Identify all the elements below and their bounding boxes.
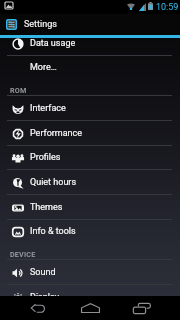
staticText: Interface <box>30 103 66 114</box>
staticText: Data usage <box>30 38 76 49</box>
button[interactable]: Performance <box>0 121 180 146</box>
staticText: Performance <box>30 128 83 139</box>
staticText: More… <box>30 62 57 73</box>
button[interactable]: Quiet hours <box>0 170 180 195</box>
staticText: Themes <box>30 202 63 213</box>
staticText: Display <box>30 292 60 296</box>
button[interactable]: Settings <box>0 14 180 35</box>
staticText: Settings <box>24 19 57 30</box>
button[interactable]: Recent apps <box>129 296 155 320</box>
staticText: Quiet hours <box>30 177 77 188</box>
staticText: Sound <box>30 267 56 278</box>
button[interactable]: Sound <box>0 260 180 285</box>
button[interactable]: Back <box>26 296 52 320</box>
staticText: Info & tools <box>30 226 76 237</box>
staticText: DEVICE <box>10 250 36 258</box>
button[interactable]: Themes <box>0 195 180 220</box>
button[interactable]: Home <box>77 296 103 320</box>
button[interactable]: Display <box>0 285 180 296</box>
button[interactable]: Data usage <box>0 38 180 56</box>
button[interactable]: Info & tools <box>0 219 180 244</box>
button[interactable]: Interface <box>0 96 180 121</box>
button[interactable]: More… <box>0 55 180 80</box>
staticText: ROM <box>10 86 27 94</box>
staticText: 10:59 <box>156 2 179 13</box>
staticText: Profiles <box>30 152 61 163</box>
button[interactable]: Profiles <box>0 145 180 170</box>
